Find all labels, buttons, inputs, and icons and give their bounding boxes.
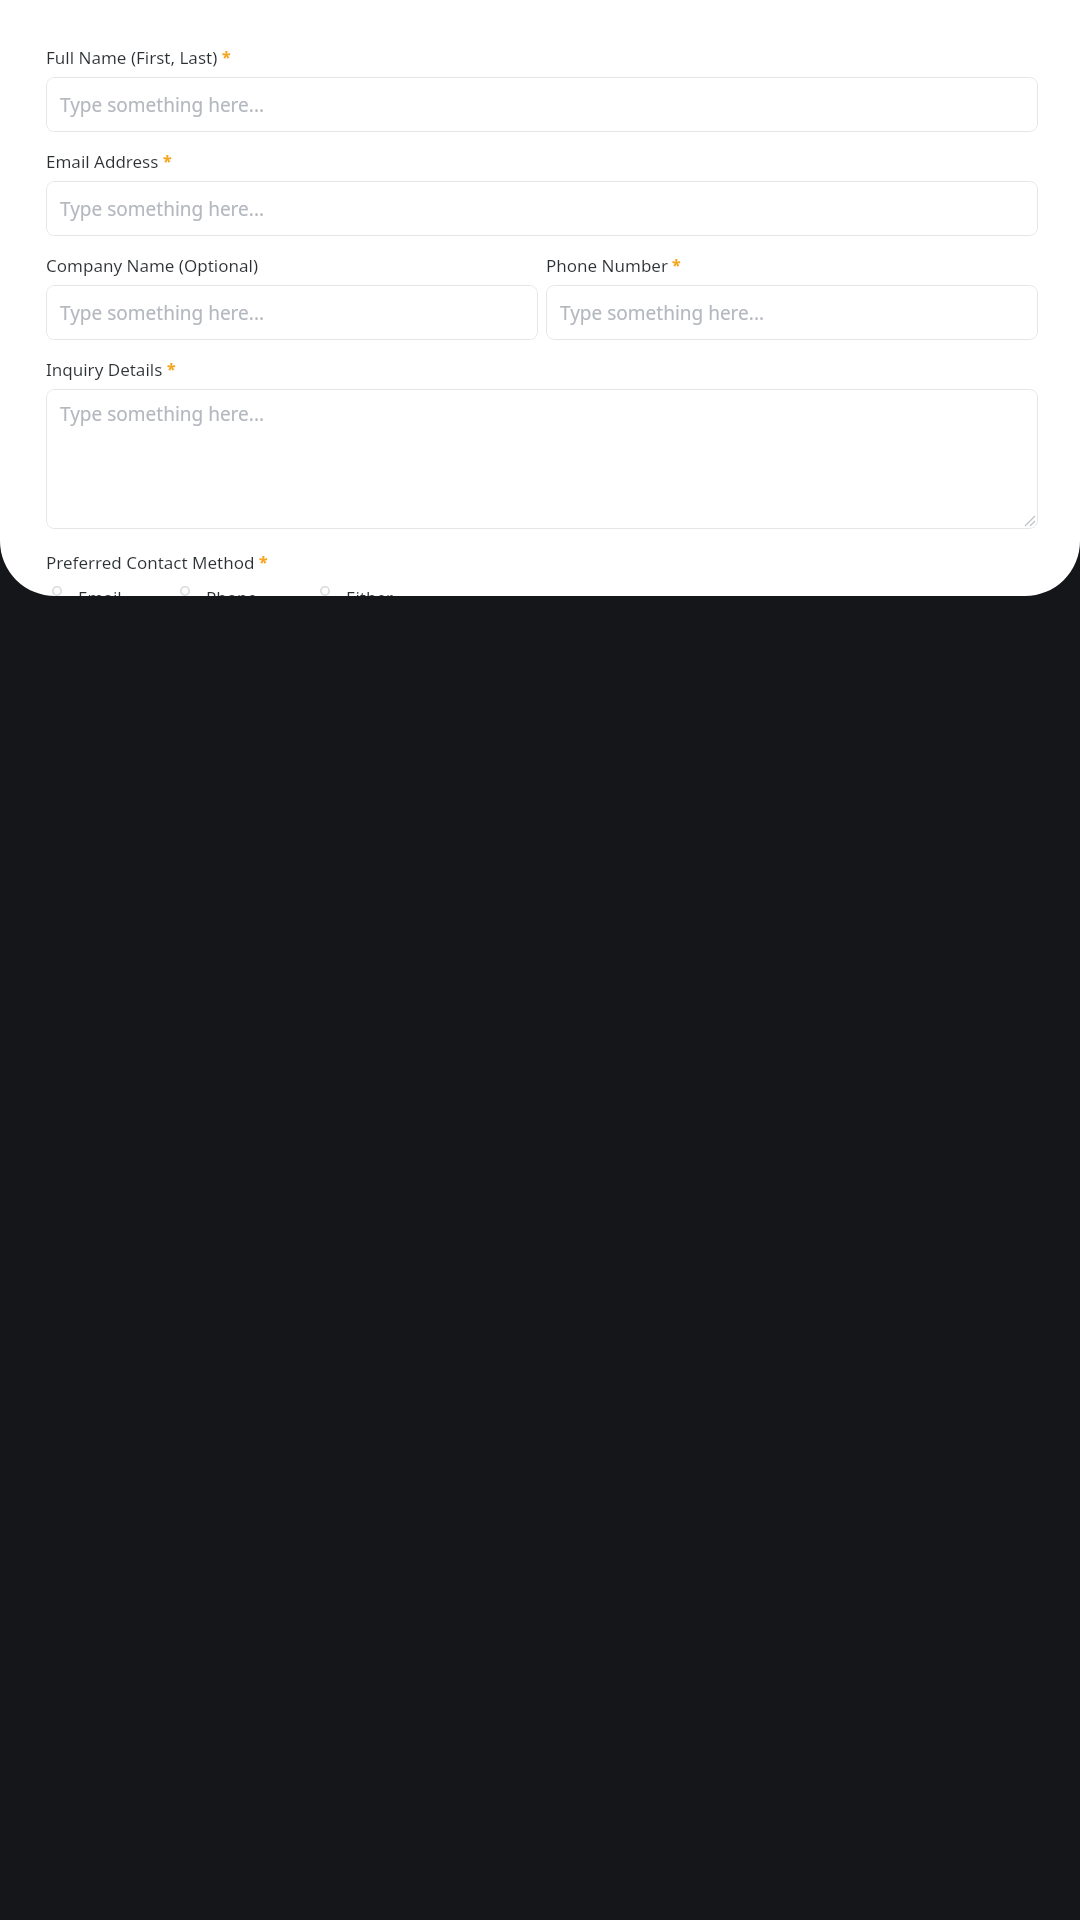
staticText: Type something here... [60, 92, 265, 118]
staticText: Either [346, 586, 394, 596]
staticText: Preferred Contact Method [46, 551, 255, 574]
staticText: Type something here... [60, 196, 265, 222]
staticText: Phone [206, 586, 258, 596]
staticText: Full Name (First, Last) [46, 46, 218, 69]
staticText: Email Address [46, 150, 159, 173]
staticText: Phone Number [546, 254, 668, 277]
button[interactable]: Type something here... [46, 389, 1038, 529]
button[interactable]: Type something here... [46, 285, 538, 340]
button[interactable]: Phone [174, 586, 258, 596]
button[interactable]: Type something here... [46, 77, 1038, 132]
staticText: Type something here... [560, 300, 765, 326]
staticText: * [222, 46, 231, 68]
staticText: * [259, 551, 268, 573]
button[interactable]: Either [314, 586, 394, 596]
staticText: * [163, 150, 172, 172]
button[interactable]: Email [46, 586, 122, 596]
staticText: * [672, 254, 681, 276]
staticText: Inquiry Details [46, 358, 163, 381]
staticText: Type something here... [60, 300, 265, 326]
staticText: Company Name (Optional) [46, 254, 259, 277]
button[interactable]: Type something here... [46, 181, 1038, 236]
staticText: Type something here... [60, 401, 265, 427]
button[interactable]: Type something here... [546, 285, 1038, 340]
staticText: * [167, 358, 176, 380]
staticText: Email [78, 586, 122, 596]
